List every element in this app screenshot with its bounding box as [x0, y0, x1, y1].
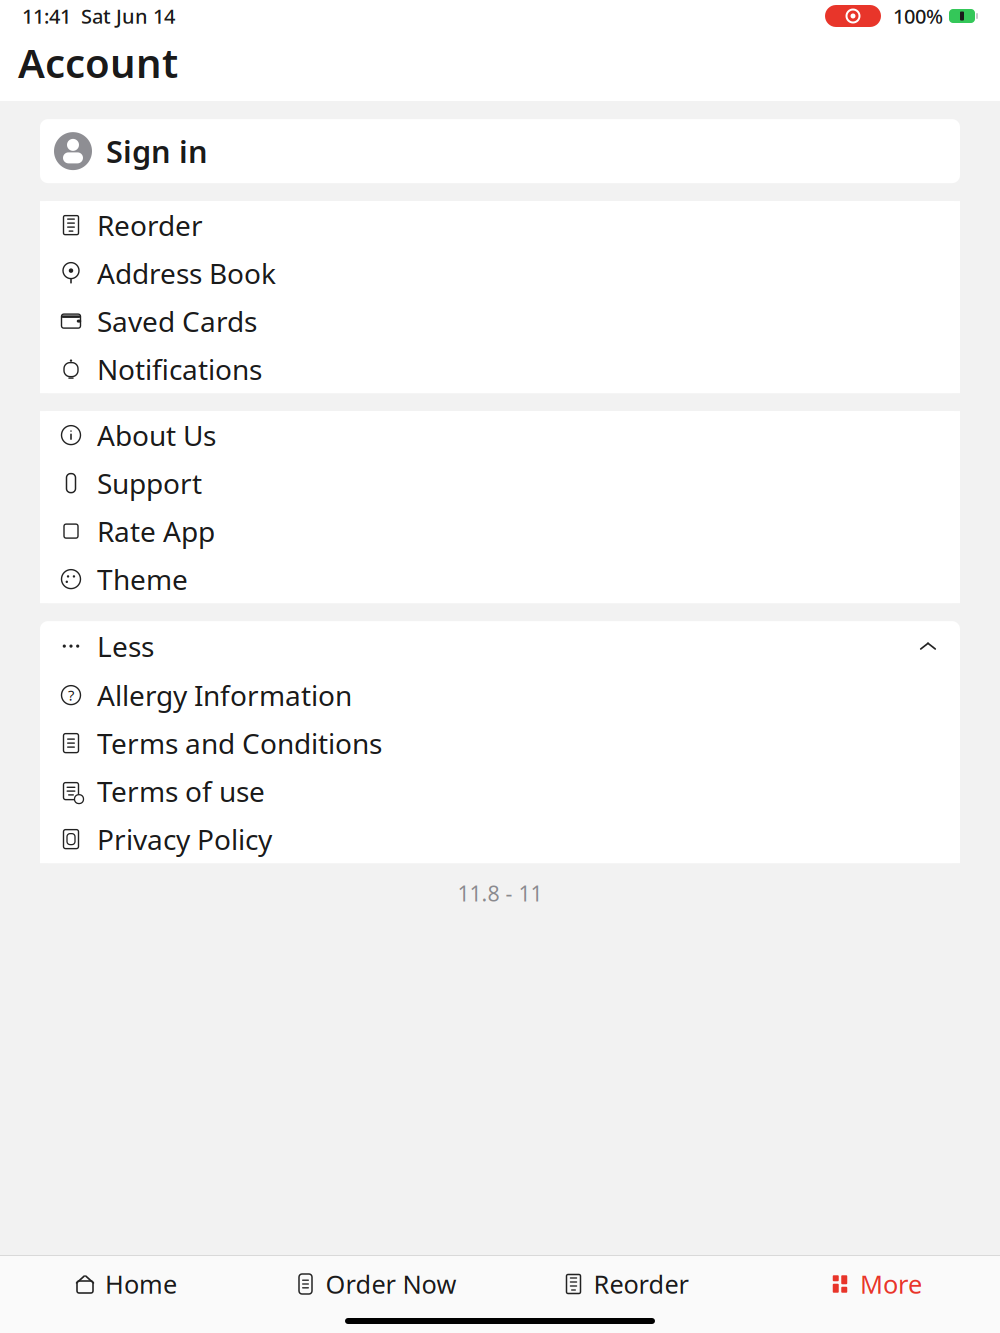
button[interactable]: Less — [40, 621, 960, 671]
staticText: Saved Cards — [97, 302, 257, 340]
button[interactable]: Privacy Policy — [40, 815, 960, 863]
staticText: About Us — [97, 416, 216, 454]
staticText: Allergy Information — [97, 676, 352, 714]
staticText: Theme — [97, 560, 188, 598]
button[interactable]: Terms of use — [40, 767, 960, 815]
staticText: Reorder — [593, 1267, 688, 1301]
button[interactable]: About Us — [40, 411, 960, 459]
button[interactable]: Home — [0, 1256, 250, 1312]
staticText: 11.8 - 11 — [457, 879, 542, 907]
staticText: Sign in — [106, 131, 208, 171]
staticText: Less — [97, 627, 154, 665]
staticText: 100% — [893, 3, 943, 29]
button[interactable]: Support — [40, 459, 960, 507]
button[interactable]: Sign in — [40, 119, 960, 183]
button[interactable]: Order Now — [250, 1256, 500, 1312]
staticText: Rate App — [97, 512, 215, 550]
staticText: Sat Jun 14 — [81, 3, 175, 29]
button[interactable]: Address Book — [40, 249, 960, 297]
staticText: ? — [68, 685, 74, 705]
button[interactable]: Reorder — [500, 1256, 750, 1312]
button[interactable]: More — [750, 1256, 1000, 1312]
staticText: 11:41 — [22, 3, 71, 29]
staticText: Privacy Policy — [97, 820, 272, 858]
staticText: Account — [18, 36, 178, 89]
staticText: Support — [97, 464, 202, 502]
staticText: Notifications — [97, 350, 262, 388]
staticText: Terms of use — [97, 772, 265, 810]
button[interactable]: Saved Cards — [40, 297, 960, 345]
button[interactable]: Reorder — [40, 201, 960, 249]
staticText: Reorder — [97, 206, 203, 244]
staticText: Terms and Conditions — [97, 724, 382, 762]
button[interactable]: Rate App — [40, 507, 960, 555]
button[interactable]: Theme — [40, 555, 960, 603]
staticText: Order Now — [325, 1267, 456, 1301]
button[interactable]: ? — [40, 671, 960, 719]
staticText: More — [860, 1267, 922, 1301]
staticText: Address Book — [97, 254, 276, 292]
button[interactable]: Terms and Conditions — [40, 719, 960, 767]
staticText: Home — [105, 1267, 177, 1301]
button[interactable]: Notifications — [40, 345, 960, 393]
